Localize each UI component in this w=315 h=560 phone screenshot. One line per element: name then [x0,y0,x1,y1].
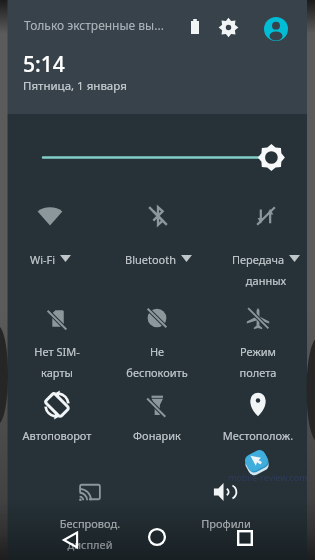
staticText: дисплей [40,537,140,552]
staticText: карты [7,365,107,380]
staticText: Фонарик [107,428,207,443]
button[interactable]: User [264,17,288,41]
staticText: Не [107,344,207,359]
button[interactable]: Recents [229,522,261,554]
button[interactable]: Home [141,521,173,553]
button[interactable]: Автоповорот [7,382,107,451]
button[interactable]: Back [54,524,86,556]
staticText: Пятница, 1 января [23,78,127,94]
button[interactable]: Беспровод. [40,469,140,559]
button[interactable]: Bluetooth [108,193,208,275]
staticText: Профили [176,516,276,531]
staticText: беспокоить [107,365,207,380]
staticText: Wi-Fi [30,252,56,267]
button[interactable]: Нет SIM- [7,295,107,387]
staticText: Местополож. [208,428,308,443]
button[interactable]: Передача [216,193,315,295]
button[interactable]: Не [107,295,207,387]
staticText: Только экстренные вы... [24,17,164,33]
staticText: mobile-review.com [228,471,308,483]
button[interactable]: Местополож. [208,382,308,451]
button[interactable]: Settings [218,17,239,38]
staticText: Автоповорот [7,428,107,443]
staticText: данных [216,273,315,288]
staticText: Нет SIM- [7,344,107,359]
staticText: полета [208,365,308,380]
staticText: Режим [208,344,308,359]
button[interactable]: Battery [185,16,205,36]
button[interactable]: Wi-Fi [0,193,100,275]
staticText: 5:14 [23,50,65,79]
button[interactable]: Фонарик [107,382,207,451]
staticText: Bluetooth [125,252,177,267]
button[interactable]: Профили [176,469,276,539]
staticText: Передача [232,252,285,267]
button[interactable]: Режим [208,295,308,387]
staticText: Беспровод. [40,516,140,531]
